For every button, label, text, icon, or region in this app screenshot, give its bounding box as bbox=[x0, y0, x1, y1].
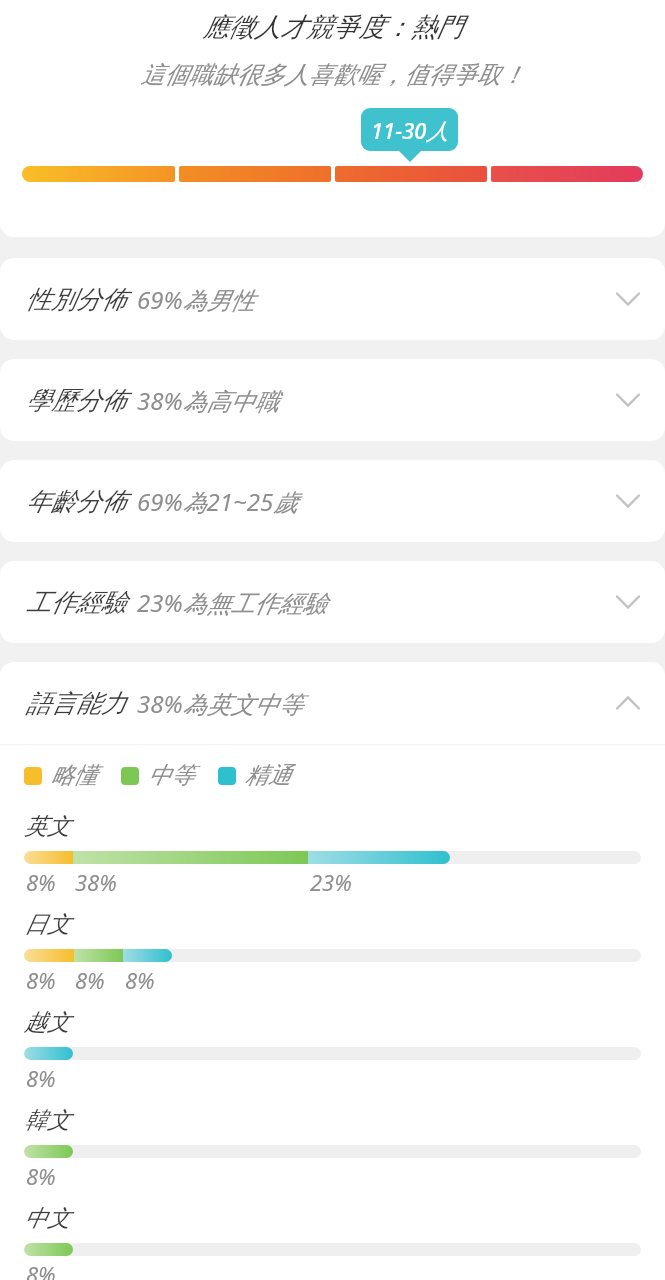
staticText: 精通 bbox=[245, 761, 291, 790]
staticText: 越文 bbox=[24, 1008, 70, 1037]
staticText: 8% bbox=[26, 1259, 56, 1280]
staticText: 38%為高中職 bbox=[137, 384, 279, 417]
staticText: 38% bbox=[75, 867, 117, 897]
staticText: 這個職缺很多人喜歡喔，值得爭取！ bbox=[0, 60, 665, 90]
staticText: 中文 bbox=[24, 1204, 70, 1233]
other: Expand 性別分佈 bbox=[613, 288, 643, 310]
staticText: 略懂 bbox=[51, 761, 97, 790]
staticText: 8% bbox=[26, 1063, 56, 1093]
staticText: 23% bbox=[310, 867, 352, 897]
staticText: 8% bbox=[75, 965, 105, 995]
other: Expand 學歷分佈 bbox=[613, 389, 643, 411]
button[interactable]: 略懂 bbox=[24, 761, 97, 790]
staticText: 8% bbox=[26, 965, 56, 995]
staticText: 韓文 bbox=[24, 1106, 70, 1135]
staticText: 性別分佈 bbox=[26, 284, 126, 315]
button[interactable]: 工作經驗 bbox=[0, 561, 665, 643]
staticText: 69%為男性 bbox=[137, 283, 255, 316]
staticText: 中等 bbox=[148, 761, 194, 790]
button[interactable]: 學歷分佈 bbox=[0, 359, 665, 441]
staticText: 8% bbox=[125, 965, 155, 995]
other: Expand 年齡分佈 bbox=[613, 490, 643, 512]
staticText: 年齡分佈 bbox=[26, 486, 126, 517]
button[interactable]: 語言能力 bbox=[0, 662, 665, 744]
button[interactable]: 年齡分佈 bbox=[0, 460, 665, 542]
button[interactable]: 精通 bbox=[218, 761, 291, 790]
staticText: 學歷分佈 bbox=[26, 385, 126, 416]
staticText: 8% bbox=[26, 867, 56, 897]
staticText: 英文 bbox=[24, 812, 70, 841]
staticText: 應徵人才競爭度：熱門 bbox=[0, 11, 665, 44]
button[interactable]: 11-30人 bbox=[361, 108, 458, 151]
staticText: 23%為無工作經驗 bbox=[137, 586, 327, 619]
button[interactable]: 中等 bbox=[121, 761, 194, 790]
staticText: 69%為21~25歲 bbox=[137, 485, 298, 518]
other: Collapse 語言能力 bbox=[613, 692, 643, 714]
staticText: 語言能力 bbox=[26, 688, 126, 719]
other: Expand 工作經驗 bbox=[613, 591, 643, 613]
staticText: 日文 bbox=[24, 910, 70, 939]
staticText: 工作經驗 bbox=[26, 587, 126, 618]
staticText: 38%為英文中等 bbox=[137, 687, 303, 720]
staticText: 11-30人 bbox=[371, 115, 449, 145]
button[interactable]: 性別分佈 bbox=[0, 258, 665, 340]
staticText: 8% bbox=[26, 1161, 56, 1191]
